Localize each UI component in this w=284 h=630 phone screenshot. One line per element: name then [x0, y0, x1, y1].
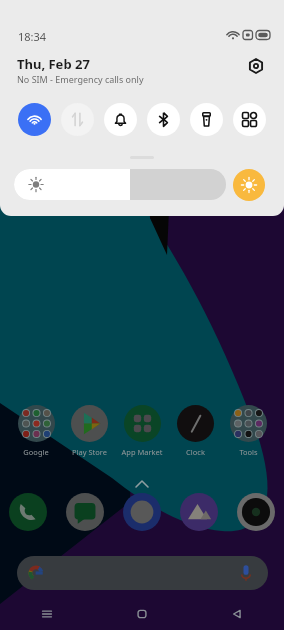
staticText: Clock — [186, 447, 205, 457]
button[interactable]: Back — [189, 600, 284, 628]
button[interactable]: Quick setting — [190, 103, 223, 136]
button[interactable]: Auto brightness — [233, 169, 265, 201]
button[interactable]: Gallery — [180, 493, 218, 531]
staticText: Thu, Feb 27 — [17, 55, 90, 73]
button[interactable]: Quick setting — [233, 103, 266, 136]
button[interactable]: Brightness — [14, 169, 226, 200]
staticText: Google — [23, 447, 49, 457]
button[interactable]: Quick setting — [61, 103, 94, 136]
button[interactable]: Tools — [222, 405, 274, 457]
button[interactable]: Recents — [0, 600, 94, 628]
staticText: App Market — [121, 447, 163, 457]
button[interactable]: Google — [10, 405, 62, 457]
staticText: 18:34 — [18, 29, 47, 44]
button[interactable]: Quick setting — [18, 103, 51, 136]
staticText: Play Store — [72, 447, 107, 457]
button[interactable]: Home — [94, 600, 189, 628]
button[interactable]: Quick setting — [147, 103, 180, 136]
button[interactable]: Quick setting — [104, 103, 137, 136]
staticText: No SIM - Emergency calls only — [17, 73, 144, 85]
button[interactable]: Search — [17, 556, 268, 590]
button[interactable]: App Market — [116, 405, 168, 457]
button[interactable]: Camera — [237, 493, 275, 531]
staticText: Tools — [239, 447, 258, 457]
button[interactable]: Clock — [169, 405, 221, 457]
button[interactable]: Phone — [9, 493, 47, 531]
button[interactable]: Settings — [246, 56, 266, 76]
button[interactable]: Play Store — [63, 405, 115, 457]
button[interactable]: Messages — [66, 493, 104, 531]
button[interactable]: Browser — [123, 493, 161, 531]
